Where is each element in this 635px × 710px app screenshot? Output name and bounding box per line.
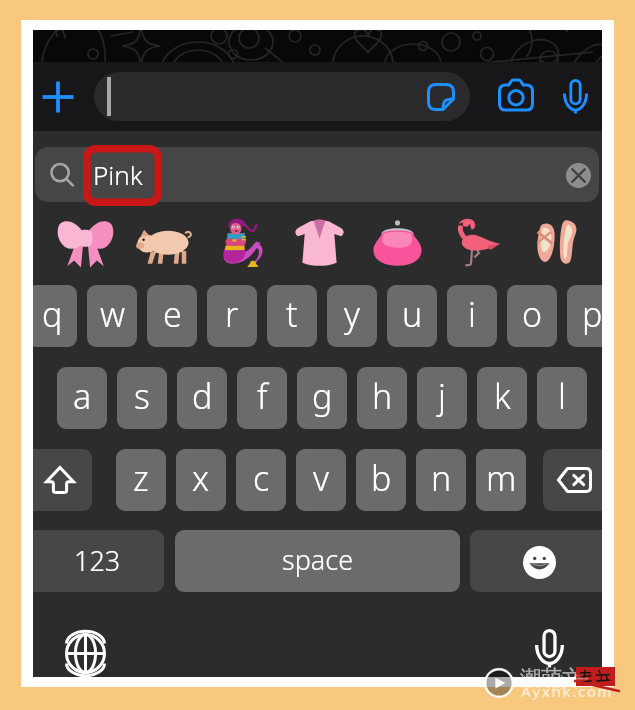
button[interactable]: h xyxy=(357,367,407,429)
button[interactable]: Emoji keyboard xyxy=(470,530,602,592)
staticText: o xyxy=(522,291,543,337)
button[interactable]: Ballet shoes xyxy=(514,205,592,279)
button[interactable]: k xyxy=(477,367,527,429)
button[interactable]: Camera xyxy=(495,74,537,116)
staticText: Pink xyxy=(93,157,143,192)
staticText: q xyxy=(42,291,63,337)
button[interactable]: Backspace xyxy=(543,449,602,511)
staticText: j xyxy=(438,373,446,419)
button[interactable]: x xyxy=(176,449,226,511)
button[interactable]: b xyxy=(356,449,406,511)
staticText: f xyxy=(257,373,268,419)
button[interactable]: r xyxy=(207,285,257,347)
button[interactable]: c xyxy=(236,449,286,511)
staticText: l xyxy=(558,373,566,419)
button[interactable]: Change keyboard xyxy=(63,631,107,675)
button[interactable]: Add attachment xyxy=(36,75,79,118)
button[interactable]: j xyxy=(417,367,467,429)
staticText: m xyxy=(486,455,517,501)
staticText: c xyxy=(253,455,270,501)
staticText: v xyxy=(313,455,329,501)
staticText: n xyxy=(431,455,452,501)
button[interactable]: g xyxy=(297,367,347,429)
staticText: h xyxy=(372,373,393,419)
staticText: 123 xyxy=(74,542,121,579)
button[interactable]: a xyxy=(57,367,107,429)
staticText: u xyxy=(402,291,423,337)
button[interactable]: d xyxy=(177,367,227,429)
button[interactable]: z xyxy=(116,449,166,511)
staticText: p xyxy=(582,291,602,337)
button[interactable]: Voice message xyxy=(563,79,588,115)
button[interactable]: m xyxy=(476,449,526,511)
staticText: a xyxy=(73,373,92,419)
button[interactable]: Flamingo xyxy=(436,205,514,279)
button[interactable]: Shift xyxy=(33,449,92,511)
button[interactable]: p xyxy=(567,285,602,347)
staticText: y xyxy=(344,291,360,337)
button[interactable]: Genie xyxy=(202,205,280,279)
staticText: 潮萌文 xyxy=(520,665,583,691)
button[interactable]: v xyxy=(296,449,346,511)
button[interactable]: Pig xyxy=(124,205,202,279)
button[interactable]: Purse xyxy=(358,205,436,279)
staticText: space xyxy=(282,541,354,578)
staticText: t xyxy=(286,291,298,337)
button[interactable]: e xyxy=(147,285,197,347)
button[interactable]: w xyxy=(87,285,137,347)
button[interactable]: o xyxy=(507,285,557,347)
staticText: w xyxy=(100,291,125,337)
button[interactable]: Stickers xyxy=(94,72,470,121)
button[interactable]: u xyxy=(387,285,437,347)
button[interactable]: l xyxy=(537,367,587,429)
button[interactable]: 123 xyxy=(33,530,164,592)
button[interactable]: Pink xyxy=(35,147,599,202)
button[interactable]: space xyxy=(175,530,460,592)
button[interactable]: i xyxy=(447,285,497,347)
button[interactable]: s xyxy=(117,367,167,429)
button[interactable]: Dictation xyxy=(535,629,564,669)
button[interactable]: Blouse xyxy=(280,205,358,279)
staticText: s xyxy=(134,373,150,419)
staticText: Ayxhk.com xyxy=(521,681,613,701)
button[interactable]: t xyxy=(267,285,317,347)
staticText: k xyxy=(494,373,511,419)
button[interactable]: Clear search xyxy=(565,162,591,188)
staticText: e xyxy=(163,291,182,337)
staticText: g xyxy=(312,373,333,419)
button[interactable]: y xyxy=(327,285,377,347)
button[interactable]: q xyxy=(33,285,77,347)
staticText: x xyxy=(192,455,210,501)
button[interactable]: f xyxy=(237,367,287,429)
button[interactable]: Stickers xyxy=(421,77,460,116)
button[interactable]: n xyxy=(416,449,466,511)
staticText: b xyxy=(371,455,392,501)
staticText: i xyxy=(468,291,476,337)
button[interactable]: Bow xyxy=(46,205,124,279)
staticText: z xyxy=(133,455,149,501)
staticText: d xyxy=(192,373,213,419)
staticText: r xyxy=(225,291,239,337)
